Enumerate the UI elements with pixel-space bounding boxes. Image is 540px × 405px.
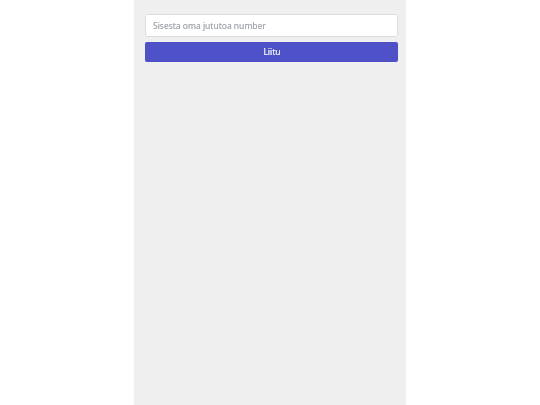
- button[interactable]: Sisesta oma jututoa number: [145, 14, 398, 37]
- staticText: Liitu: [263, 46, 281, 58]
- button[interactable]: Liitu: [145, 42, 398, 62]
- staticText: Sisesta oma jututoa number: [153, 20, 266, 32]
